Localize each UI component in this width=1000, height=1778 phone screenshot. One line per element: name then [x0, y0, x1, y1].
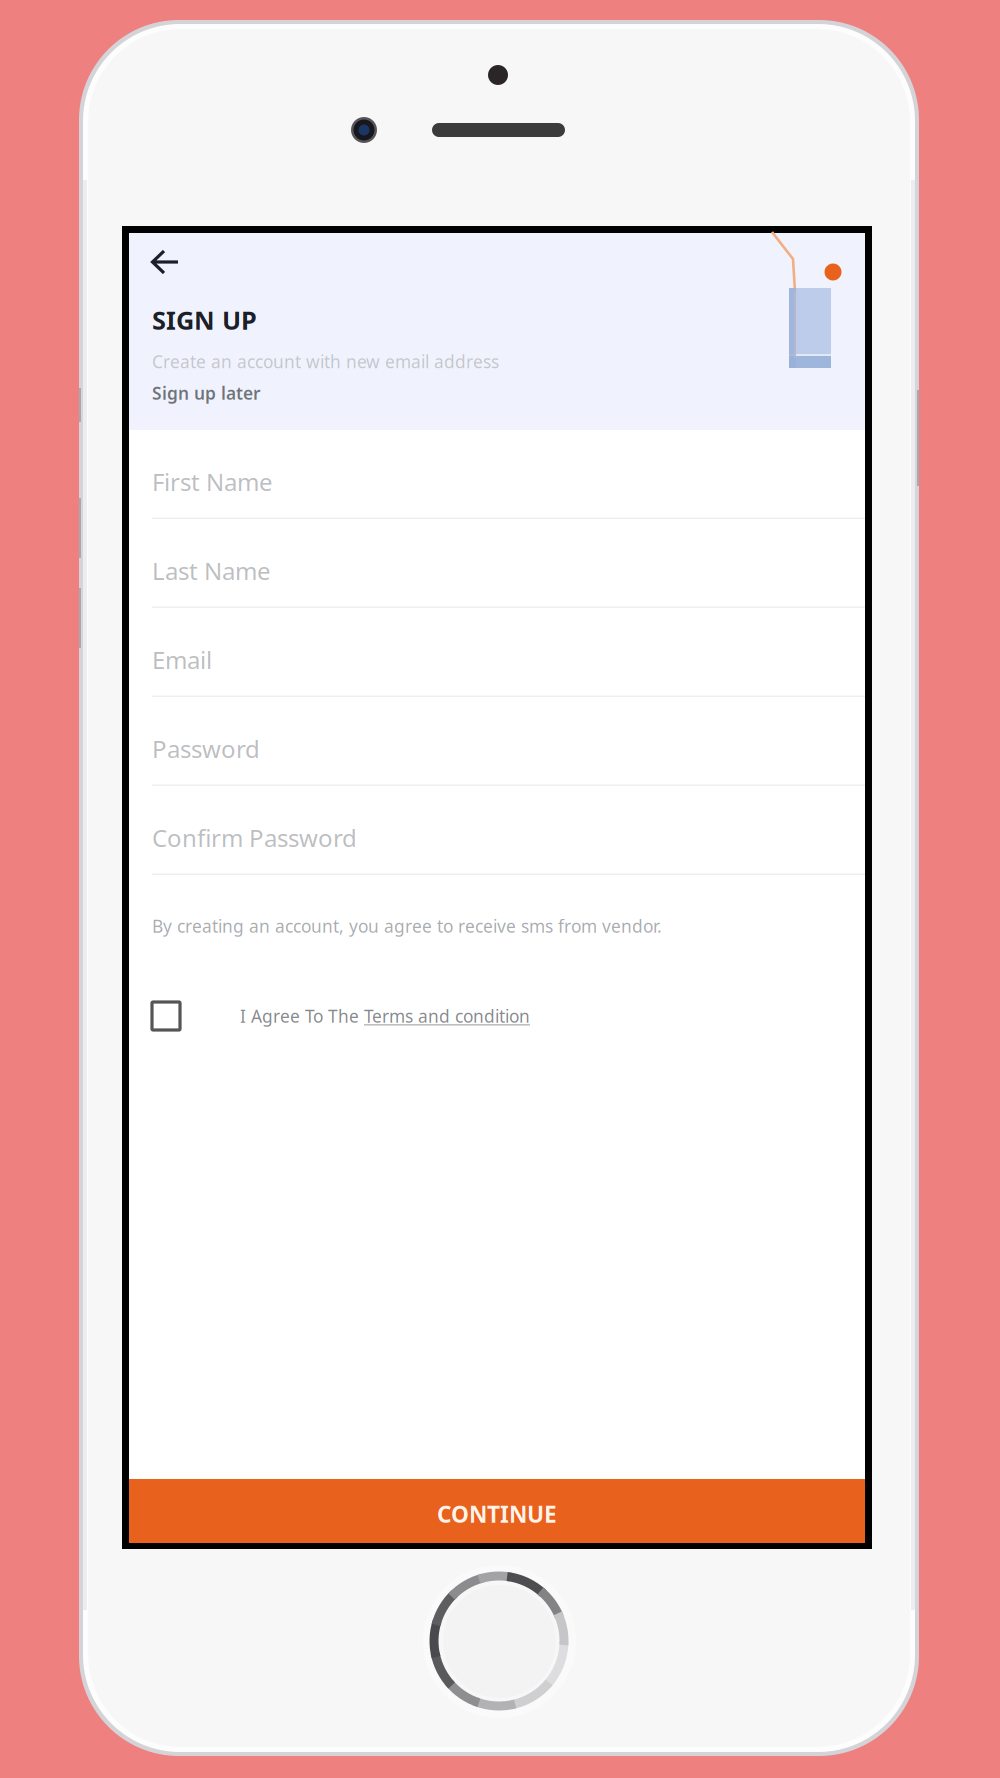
staticText: Email — [152, 644, 212, 676]
staticText: Sign up later — [152, 381, 261, 404]
button[interactable]: Confirm Password — [129, 786, 865, 875]
button[interactable]: Last Name — [129, 519, 865, 608]
staticText: Last Name — [152, 555, 271, 587]
staticText: SIGN UP — [152, 303, 257, 337]
button[interactable]: Email — [129, 608, 865, 697]
button[interactable]: Password — [129, 697, 865, 786]
button[interactable]: Sign up later — [152, 380, 261, 406]
staticText: I Agree To The — [240, 1004, 364, 1027]
button[interactable]: First Name — [129, 430, 865, 519]
staticText: By creating an account, you agree to rec… — [152, 914, 662, 937]
staticText: First Name — [152, 466, 273, 498]
button[interactable]: CONTINUE — [129, 1479, 865, 1543]
staticText: Create an account with new email address — [152, 350, 499, 373]
staticText: Confirm Password — [152, 822, 357, 854]
button[interactable]: Back — [150, 230, 208, 274]
staticText: Password — [152, 733, 260, 765]
staticText: CONTINUE — [437, 1499, 557, 1529]
button[interactable]: I Agree To The — [152, 957, 842, 1031]
staticText: Terms and condition — [364, 1004, 530, 1027]
